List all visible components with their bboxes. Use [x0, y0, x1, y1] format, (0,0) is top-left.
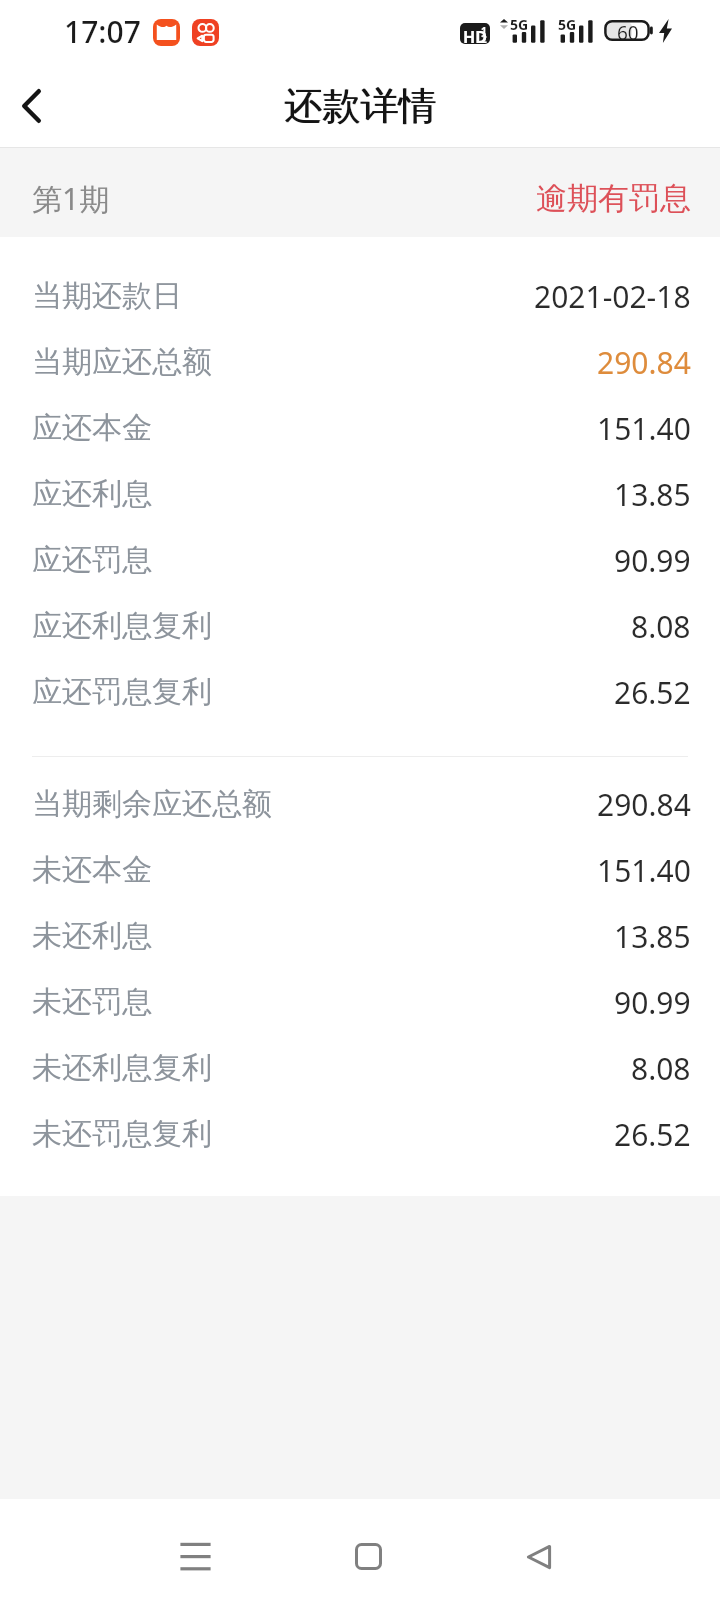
button[interactable]: 应还罚息 — [0, 527, 720, 593]
button[interactable]: 未还罚息复利 — [0, 1101, 720, 1167]
button[interactable]: 当期应还总额 — [0, 329, 720, 395]
staticText: 5G — [558, 15, 577, 34]
staticText: 未还罚息复利 — [32, 1115, 212, 1153]
staticText: 151.40 — [597, 850, 691, 891]
staticText: 逾期有罚息 — [536, 179, 691, 218]
staticText: 26.52 — [614, 672, 691, 713]
button[interactable]: Recent apps — [147, 1499, 243, 1600]
staticText: 290.84 — [597, 784, 691, 825]
staticText: 13.85 — [614, 474, 691, 515]
staticText: 应还利息 — [32, 475, 152, 513]
button[interactable]: 应还利息 — [0, 461, 720, 527]
staticText: 还款详情 — [284, 82, 436, 130]
staticText: 应还利息复利 — [32, 607, 212, 645]
staticText: 未还利息复利 — [32, 1049, 212, 1087]
staticText: 当期还款日 — [32, 277, 182, 315]
button[interactable]: 应还利息复利 — [0, 593, 720, 659]
staticText: 90.99 — [614, 982, 691, 1023]
button[interactable]: 未还利息 — [0, 903, 720, 969]
staticText: 未还利息 — [32, 917, 152, 955]
staticText: 60 — [617, 20, 639, 42]
staticText: 未还本金 — [32, 851, 152, 889]
button[interactable]: Back — [0, 60, 62, 147]
button[interactable]: 未还罚息 — [0, 969, 720, 1035]
staticText: 2 — [481, 32, 487, 44]
staticText: 当期应还总额 — [32, 343, 212, 381]
staticText: 17:07 — [64, 11, 141, 52]
staticText: 未还罚息 — [32, 983, 152, 1021]
button[interactable]: 当期剩余应还总额 — [0, 771, 720, 837]
staticText: 应还本金 — [32, 409, 152, 447]
staticText: HD — [463, 26, 487, 44]
button[interactable]: Home — [320, 1499, 416, 1600]
staticText: 8.08 — [631, 606, 691, 647]
staticText: 当期剩余应还总额 — [32, 785, 272, 823]
staticText: 8.08 — [631, 1048, 691, 1089]
button[interactable]: Back — [491, 1499, 587, 1600]
staticText: 1 — [481, 24, 487, 38]
staticText: 13.85 — [614, 916, 691, 957]
button[interactable]: 应还罚息复利 — [0, 659, 720, 725]
button[interactable]: 未还利息复利 — [0, 1035, 720, 1101]
staticText: 2021-02-18 — [534, 276, 691, 317]
staticText: 90.99 — [614, 540, 691, 581]
button[interactable]: 当期还款日 — [0, 263, 720, 329]
staticText: 151.40 — [597, 408, 691, 449]
staticText: 还款详情 — [285, 82, 437, 130]
button[interactable]: 应还本金 — [0, 395, 720, 461]
staticText: 290.84 — [597, 342, 691, 383]
staticText: 应还罚息 — [32, 541, 152, 579]
staticText: 5G — [510, 15, 529, 34]
staticText: 第1期 — [32, 178, 110, 219]
staticText: 26.52 — [614, 1114, 691, 1155]
staticText: 应还罚息复利 — [32, 673, 212, 711]
button[interactable]: 未还本金 — [0, 837, 720, 903]
